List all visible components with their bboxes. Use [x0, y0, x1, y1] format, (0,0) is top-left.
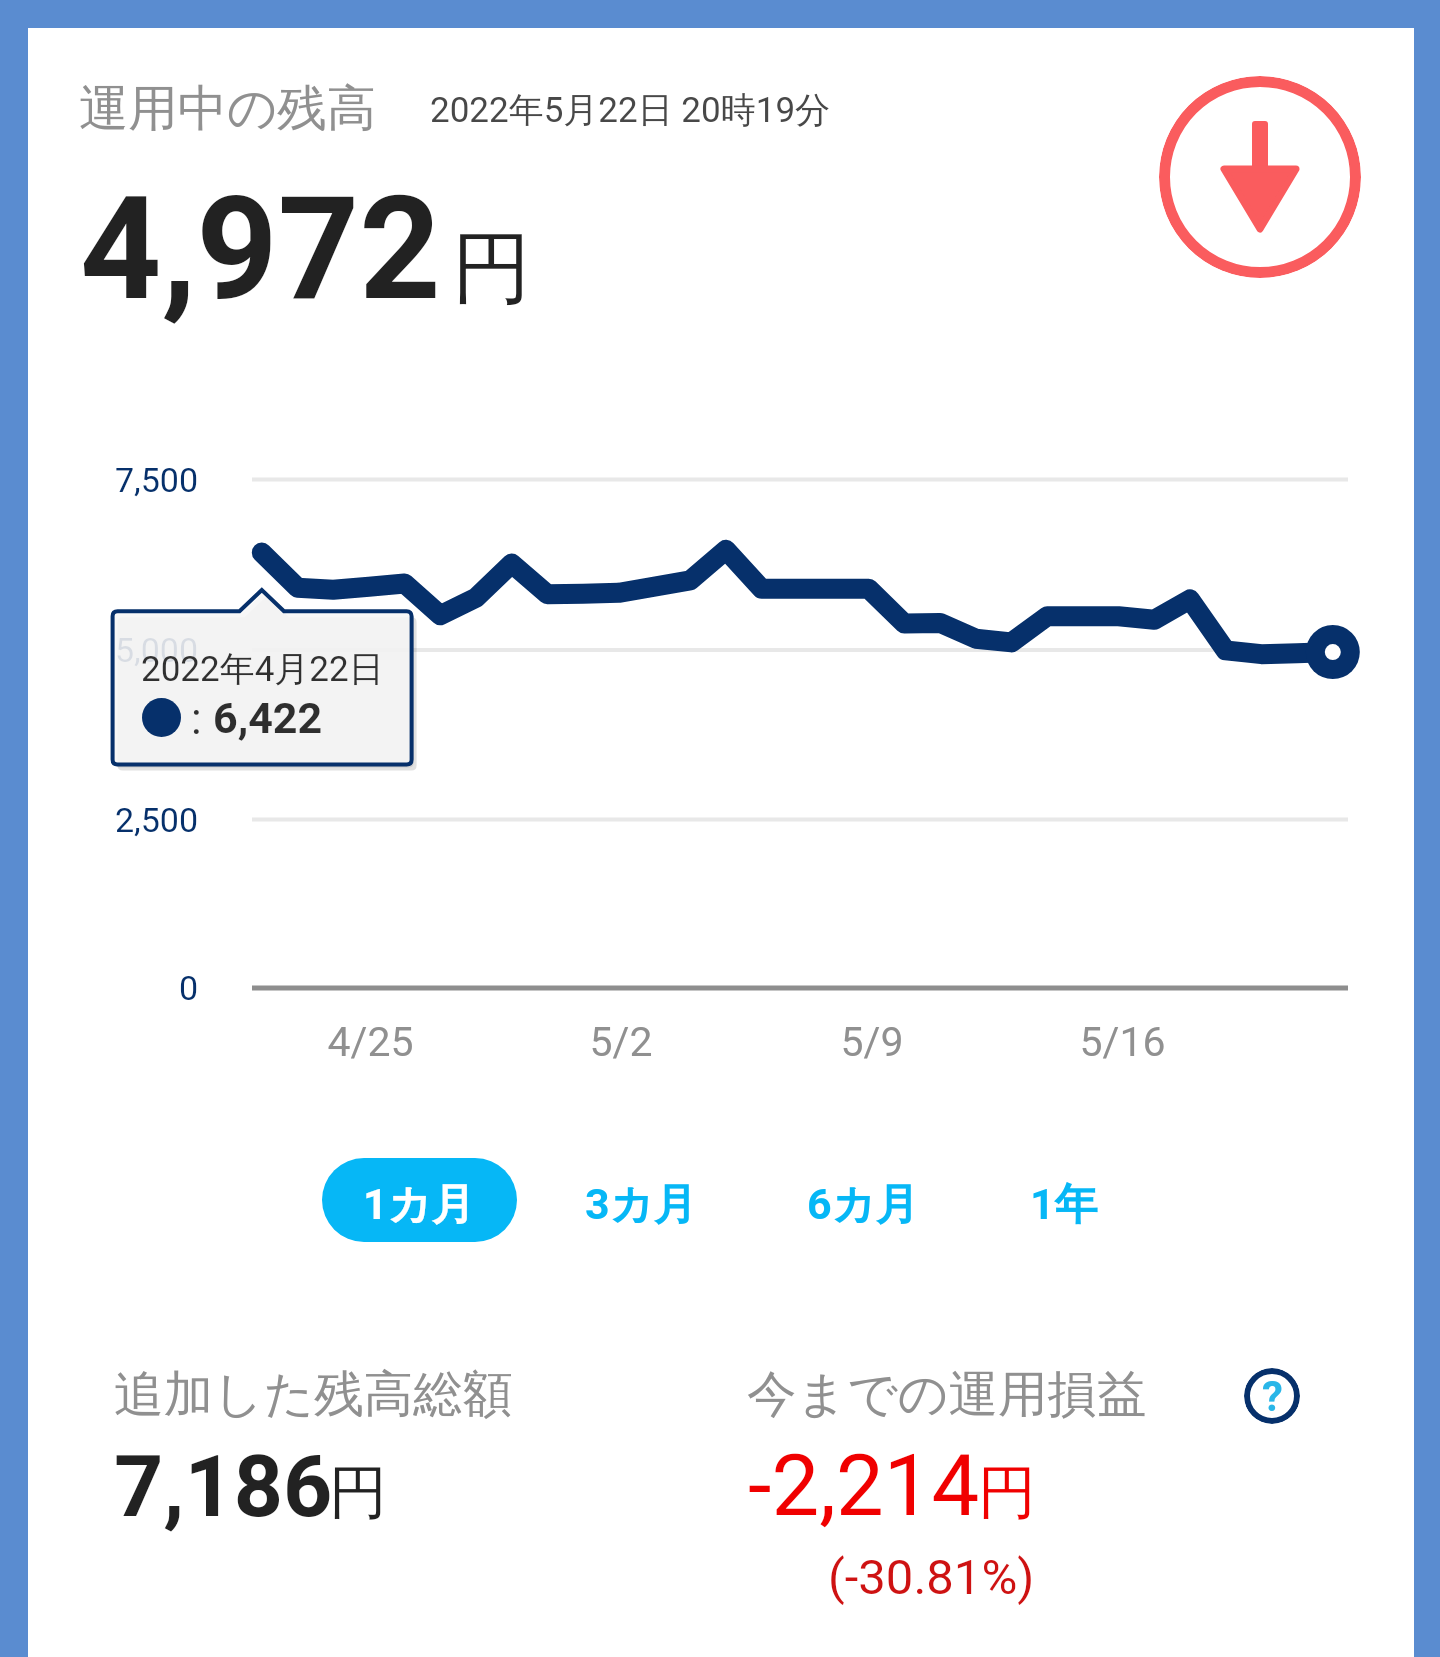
staticText: 追加した残高総額: [114, 1363, 513, 1425]
staticText: 7,186: [114, 1436, 333, 1537]
staticText: 6カ月: [807, 1178, 919, 1232]
staticText: 5/16: [1079, 1018, 1166, 1066]
staticText: 0: [178, 968, 198, 1008]
staticText: 3カ月: [585, 1178, 697, 1232]
staticText: 6,422: [213, 693, 323, 743]
staticText: ?: [1262, 1372, 1283, 1421]
staticText: (-30.81%): [828, 1549, 1035, 1606]
staticText: 4,972: [80, 166, 441, 332]
staticText: 円: [978, 1456, 1036, 1529]
staticText: 今までの運用損益: [747, 1363, 1147, 1425]
staticText: :: [191, 693, 202, 745]
staticText: 4/25: [327, 1018, 414, 1066]
button[interactable]: Withdraw: [1159, 76, 1361, 278]
staticText: 7,500: [114, 460, 198, 500]
staticText: 5,000: [114, 630, 198, 670]
staticText: 5/2: [589, 1018, 653, 1066]
button[interactable]: 1カ月: [322, 1158, 517, 1242]
staticText: 5/9: [840, 1018, 904, 1066]
button[interactable]: 1年: [989, 1158, 1184, 1242]
staticText: 円: [452, 219, 531, 319]
button[interactable]: Help: [1244, 1368, 1300, 1424]
staticText: 運用中の残高: [79, 78, 376, 140]
staticText: 2,500: [114, 800, 198, 840]
staticText: 円: [329, 1456, 387, 1529]
staticText: 1カ月: [363, 1178, 475, 1232]
staticText: 2022年5月22日 20時19分: [430, 88, 831, 132]
staticText: -2,214: [748, 1436, 980, 1536]
staticText: 1年: [1030, 1178, 1098, 1232]
button[interactable]: 3カ月: [544, 1158, 739, 1242]
button[interactable]: 6カ月: [766, 1158, 961, 1242]
staticText: 2022年4月22日: [141, 647, 384, 691]
